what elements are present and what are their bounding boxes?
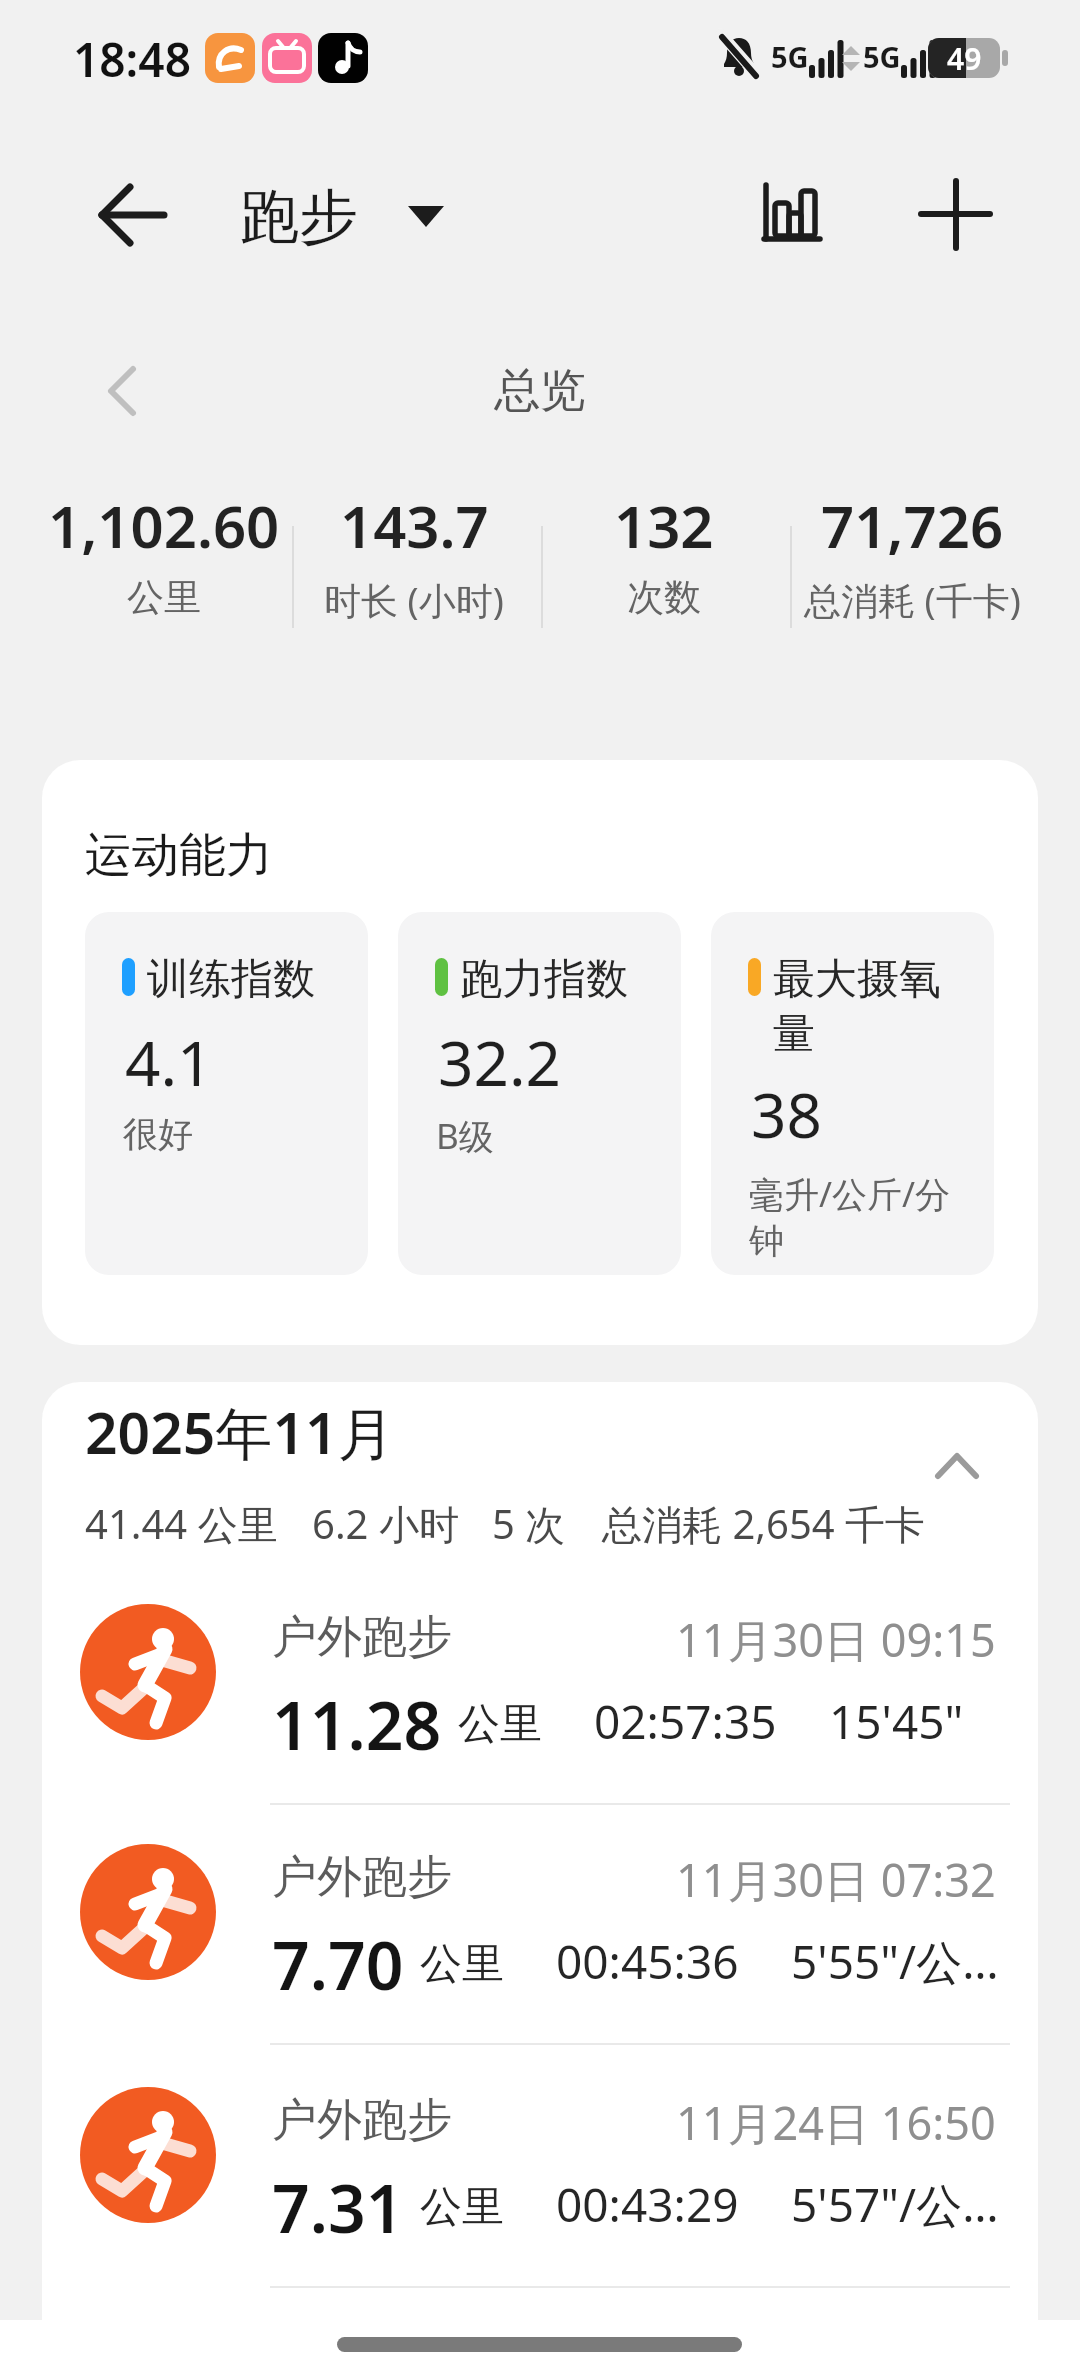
- staticText: 132: [614, 486, 714, 565]
- staticText: 11.28: [272, 1679, 442, 1759]
- staticText: 训练指数: [147, 953, 315, 1006]
- staticText: 1,102.60: [48, 486, 280, 565]
- staticText: 4.1: [125, 1020, 213, 1104]
- staticText: 5G: [771, 37, 809, 76]
- staticText: 00:43:29: [556, 2173, 739, 2236]
- staticText: 71,726: [821, 486, 1004, 565]
- staticText: 15'45": [829, 1690, 964, 1753]
- staticText: 5G: [863, 37, 901, 76]
- staticText: B级: [436, 1112, 494, 1160]
- staticText: 143.7: [340, 486, 489, 565]
- staticText: 02:57:35: [594, 1690, 777, 1753]
- staticText: 户外跑步: [272, 1849, 452, 1906]
- staticText: 18:48: [73, 28, 191, 91]
- staticText: 5'55"/公…: [791, 1930, 999, 1993]
- staticText: 跑步: [240, 180, 358, 254]
- staticText: 5'57"/公…: [791, 2173, 999, 2236]
- staticText: 公里: [420, 1938, 504, 1991]
- staticText: 00:45:36: [556, 1930, 739, 1993]
- staticText: 总消耗 2,654 千卡: [602, 1496, 926, 1551]
- staticText: 公里: [127, 574, 201, 621]
- staticText: 很好: [123, 1112, 193, 1156]
- staticText: 公里: [458, 1698, 542, 1751]
- staticText: 11月30日 09:15: [676, 1609, 996, 1670]
- staticText: 总览: [494, 362, 586, 420]
- staticText: 总消耗 (千卡): [804, 574, 1021, 625]
- staticText: 38: [751, 1072, 822, 1156]
- staticText: 11月24日 16:50: [676, 2092, 996, 2153]
- staticText: 最大摄氧量: [773, 953, 973, 1060]
- staticText: 7.31: [272, 2162, 404, 2242]
- staticText: 5 次: [492, 1496, 566, 1551]
- staticText: 7.70: [272, 1919, 404, 1999]
- staticText: 41.44 公里: [85, 1496, 278, 1551]
- staticText: 6.2 小时: [312, 1496, 459, 1551]
- staticText: 公里: [420, 2181, 504, 2234]
- staticText: 2025年11月: [85, 1393, 395, 1471]
- staticText: 49: [947, 38, 982, 79]
- staticText: 跑力指数: [460, 953, 628, 1006]
- staticText: 32.2: [438, 1020, 562, 1104]
- staticText: 户外跑步: [272, 1609, 452, 1666]
- staticText: 次数: [627, 574, 701, 621]
- staticText: 毫升/公斤/分钟: [749, 1170, 964, 1263]
- staticText: 运动能力: [85, 826, 273, 885]
- staticText: 11月30日 07:32: [676, 1849, 996, 1910]
- staticText: 时长 (小时): [324, 574, 504, 625]
- staticText: 户外跑步: [272, 2092, 452, 2149]
